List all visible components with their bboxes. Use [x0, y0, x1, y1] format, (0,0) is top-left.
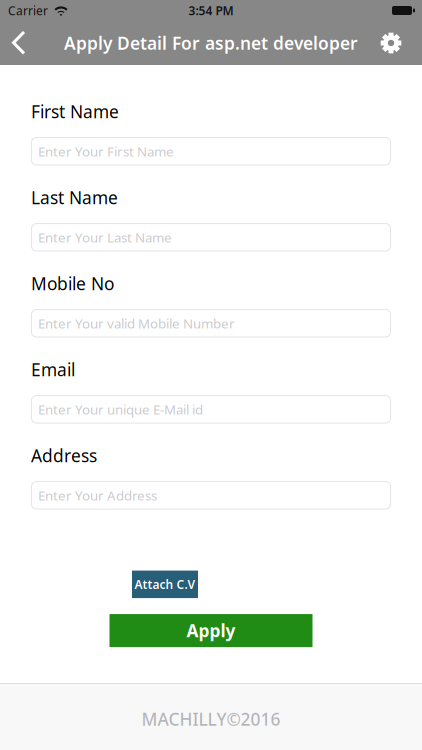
staticText: Address	[31, 444, 97, 467]
button[interactable]: Enter Your Address	[31, 481, 391, 510]
staticText: Enter Your First Name	[38, 142, 174, 160]
button[interactable]: Apply	[109, 614, 312, 647]
button[interactable]: Settings	[369, 21, 413, 65]
button[interactable]: Enter Your valid Mobile Number	[31, 309, 391, 338]
staticText: Apply Detail For asp.net developer	[64, 31, 358, 54]
staticText: Apply	[186, 619, 235, 642]
button[interactable]: Enter Your unique E-Mail id	[31, 395, 391, 424]
staticText: Enter Your Last Name	[38, 228, 172, 246]
staticText: Carrier	[8, 2, 48, 18]
staticText: Enter Your unique E-Mail id	[38, 400, 203, 418]
button[interactable]: Enter Your First Name	[31, 137, 391, 165]
staticText: Mobile No	[31, 272, 114, 295]
button[interactable]: Enter Your Last Name	[31, 223, 391, 251]
staticText: 3:54 PM	[188, 2, 233, 18]
staticText: Attach C.V	[134, 576, 195, 592]
staticText: Enter Your valid Mobile Number	[38, 314, 235, 332]
button[interactable]: Back	[0, 21, 34, 65]
staticText: Enter Your Address	[38, 486, 157, 504]
staticText: Email	[31, 358, 75, 381]
staticText: MACHILLY©2016	[141, 707, 280, 730]
staticText: Last Name	[31, 186, 118, 209]
staticText: First Name	[31, 100, 119, 123]
button[interactable]: Attach C.V	[132, 571, 198, 598]
